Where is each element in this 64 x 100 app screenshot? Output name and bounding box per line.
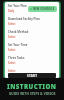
staticText: Select	[8, 35, 16, 39]
button[interactable]: NEW SCHEDULE	[28, 6, 57, 12]
staticText: START	[27, 74, 38, 78]
button[interactable]: Set Your Plan	[5, 2, 59, 15]
button[interactable]: Set Your Time	[5, 41, 59, 54]
staticText: INSTRUCTION	[7, 82, 57, 90]
button[interactable]: START	[8, 73, 56, 78]
staticText: Daily	[8, 9, 15, 13]
staticText: NEW SCHEDULE	[33, 7, 55, 11]
button[interactable]: Check Method	[5, 28, 59, 41]
staticText: GUIDE WITH STEPS & VIDEOS	[9, 92, 56, 96]
staticText: Select	[8, 61, 16, 65]
staticText: Three Tasks	[8, 56, 25, 60]
staticText: Select	[8, 22, 16, 26]
staticText: Select	[8, 69, 16, 73]
button[interactable]: Three Tasks	[5, 54, 59, 67]
staticText: Set Your Plan	[8, 4, 27, 8]
staticText: Download Facility Plan	[8, 17, 40, 21]
staticText: Select	[8, 48, 16, 52]
button[interactable]: Download Facility Plan	[5, 15, 59, 28]
staticText: Set Your Time	[8, 43, 28, 47]
staticText: Check Method	[8, 30, 29, 34]
